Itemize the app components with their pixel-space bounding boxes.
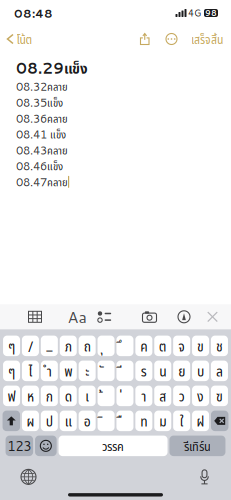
button[interactable]: จ [173, 336, 190, 356]
staticText: ผ [26, 411, 34, 431]
staticText: ก [46, 386, 53, 406]
staticText: 08.29แข็ง [16, 57, 88, 79]
button[interactable]: อ [79, 411, 96, 431]
staticText: ค [140, 336, 147, 356]
staticText: ม [159, 411, 166, 431]
staticText: 08.32คลาย [16, 78, 68, 94]
button[interactable]: ฟ [3, 386, 20, 406]
button[interactable]: ุ [97, 336, 114, 356]
staticText: ถ [84, 336, 91, 356]
button[interactable]: เสร็จสิ้น [187, 25, 223, 53]
button[interactable]: ี [116, 361, 133, 381]
button[interactable]: ว [173, 386, 190, 406]
button[interactable]: พ [60, 361, 77, 381]
button[interactable]: ผ [22, 411, 39, 431]
button[interactable]: ส [154, 386, 171, 406]
button[interactable]: ก [41, 386, 58, 406]
staticText: ่ [118, 386, 122, 406]
button[interactable]: ิ [97, 411, 114, 431]
staticText: ฝ [197, 411, 205, 431]
button[interactable]: ฃ [211, 386, 228, 406]
staticText: ะ [85, 361, 89, 381]
button[interactable]: ะ [79, 361, 96, 381]
button[interactable]: ื [116, 411, 133, 431]
staticText: พ [64, 361, 72, 381]
button[interactable]: ไ [22, 361, 39, 381]
button[interactable]: ใ [173, 411, 190, 431]
button[interactable]: ท [135, 411, 152, 431]
staticText: 08.35แข็ง [16, 94, 63, 110]
staticText: ต [159, 336, 167, 356]
button[interactable]: Backspace [211, 411, 228, 431]
staticText: ท [140, 411, 147, 431]
button[interactable]: วรรค [59, 436, 168, 456]
button[interactable]: บ [192, 361, 209, 381]
button[interactable]: ม [154, 411, 171, 431]
button[interactable]: ย [173, 361, 190, 381]
button[interactable]: Markup [172, 304, 196, 329]
button[interactable]: โน้ต [7, 25, 36, 53]
button[interactable]: ง [192, 386, 209, 406]
button[interactable]: Dictate [196, 467, 213, 487]
staticText: ำ [47, 361, 52, 381]
button[interactable]: ำ [41, 361, 58, 381]
button[interactable]: / [22, 336, 39, 356]
button[interactable]: เ [79, 386, 96, 406]
staticText: 08.43คลาย [16, 142, 68, 158]
button[interactable]: ร [135, 361, 152, 381]
staticText: _ [45, 335, 53, 356]
button[interactable]: น [154, 361, 171, 381]
button[interactable]: _ [41, 336, 58, 356]
button[interactable]: Text format [65, 304, 89, 329]
button[interactable]: ถ [79, 336, 96, 356]
button[interactable]: ๆ [3, 361, 20, 381]
button[interactable]: ป [41, 411, 58, 431]
button[interactable]: ฝ [192, 411, 209, 431]
staticText: 4G [188, 6, 201, 20]
button[interactable]: Share [135, 28, 154, 49]
button[interactable]: า [135, 386, 152, 406]
staticText: ข [197, 336, 204, 356]
button[interactable]: Next keyboard [18, 466, 39, 487]
staticText: ล [216, 361, 223, 381]
button[interactable]: ภ [60, 336, 77, 356]
button[interactable]: Checklist [92, 304, 116, 329]
button[interactable]: ่ [116, 386, 133, 406]
staticText: วรรค [102, 437, 124, 455]
staticText: 08.47คลาย [16, 174, 68, 190]
button[interactable]: More [161, 28, 182, 49]
staticText: ง [197, 386, 204, 406]
button[interactable]: Emoji [35, 436, 57, 456]
staticText: ไ [28, 361, 32, 381]
staticText: 123 [7, 436, 31, 455]
button[interactable]: ้ [97, 386, 114, 406]
staticText: ห [27, 386, 34, 406]
button[interactable]: Table [23, 304, 47, 329]
button[interactable]: ช [211, 336, 228, 356]
button[interactable]: ล [211, 361, 228, 381]
button[interactable]: ด [60, 386, 77, 406]
staticText: ฟ [7, 386, 15, 406]
button[interactable]: Shift [2, 411, 20, 431]
staticText: 08.41 แข็ง [16, 126, 66, 142]
staticText: ึ [118, 336, 122, 356]
staticText: ภ [65, 336, 72, 356]
button[interactable]: Camera [137, 304, 161, 329]
button[interactable]: ๆ [3, 336, 20, 356]
button[interactable]: 123 [6, 436, 33, 456]
button[interactable]: รีเทิร์น [169, 436, 225, 456]
button[interactable]: ข [192, 336, 209, 356]
staticText: ๆ [8, 336, 15, 356]
button[interactable]: ห [22, 386, 39, 406]
staticText: น [159, 361, 166, 381]
staticText: ฃ [216, 386, 223, 406]
button[interactable]: ึ [116, 336, 133, 356]
button[interactable]: Close [200, 304, 224, 329]
staticText: เสร็จสิ้น [191, 30, 223, 48]
button[interactable]: ต [154, 336, 171, 356]
button[interactable]: ั [97, 361, 114, 381]
button[interactable]: ค [135, 336, 152, 356]
button[interactable]: แ [60, 411, 77, 431]
staticText: อ [84, 411, 91, 431]
staticText: ช [216, 336, 223, 356]
